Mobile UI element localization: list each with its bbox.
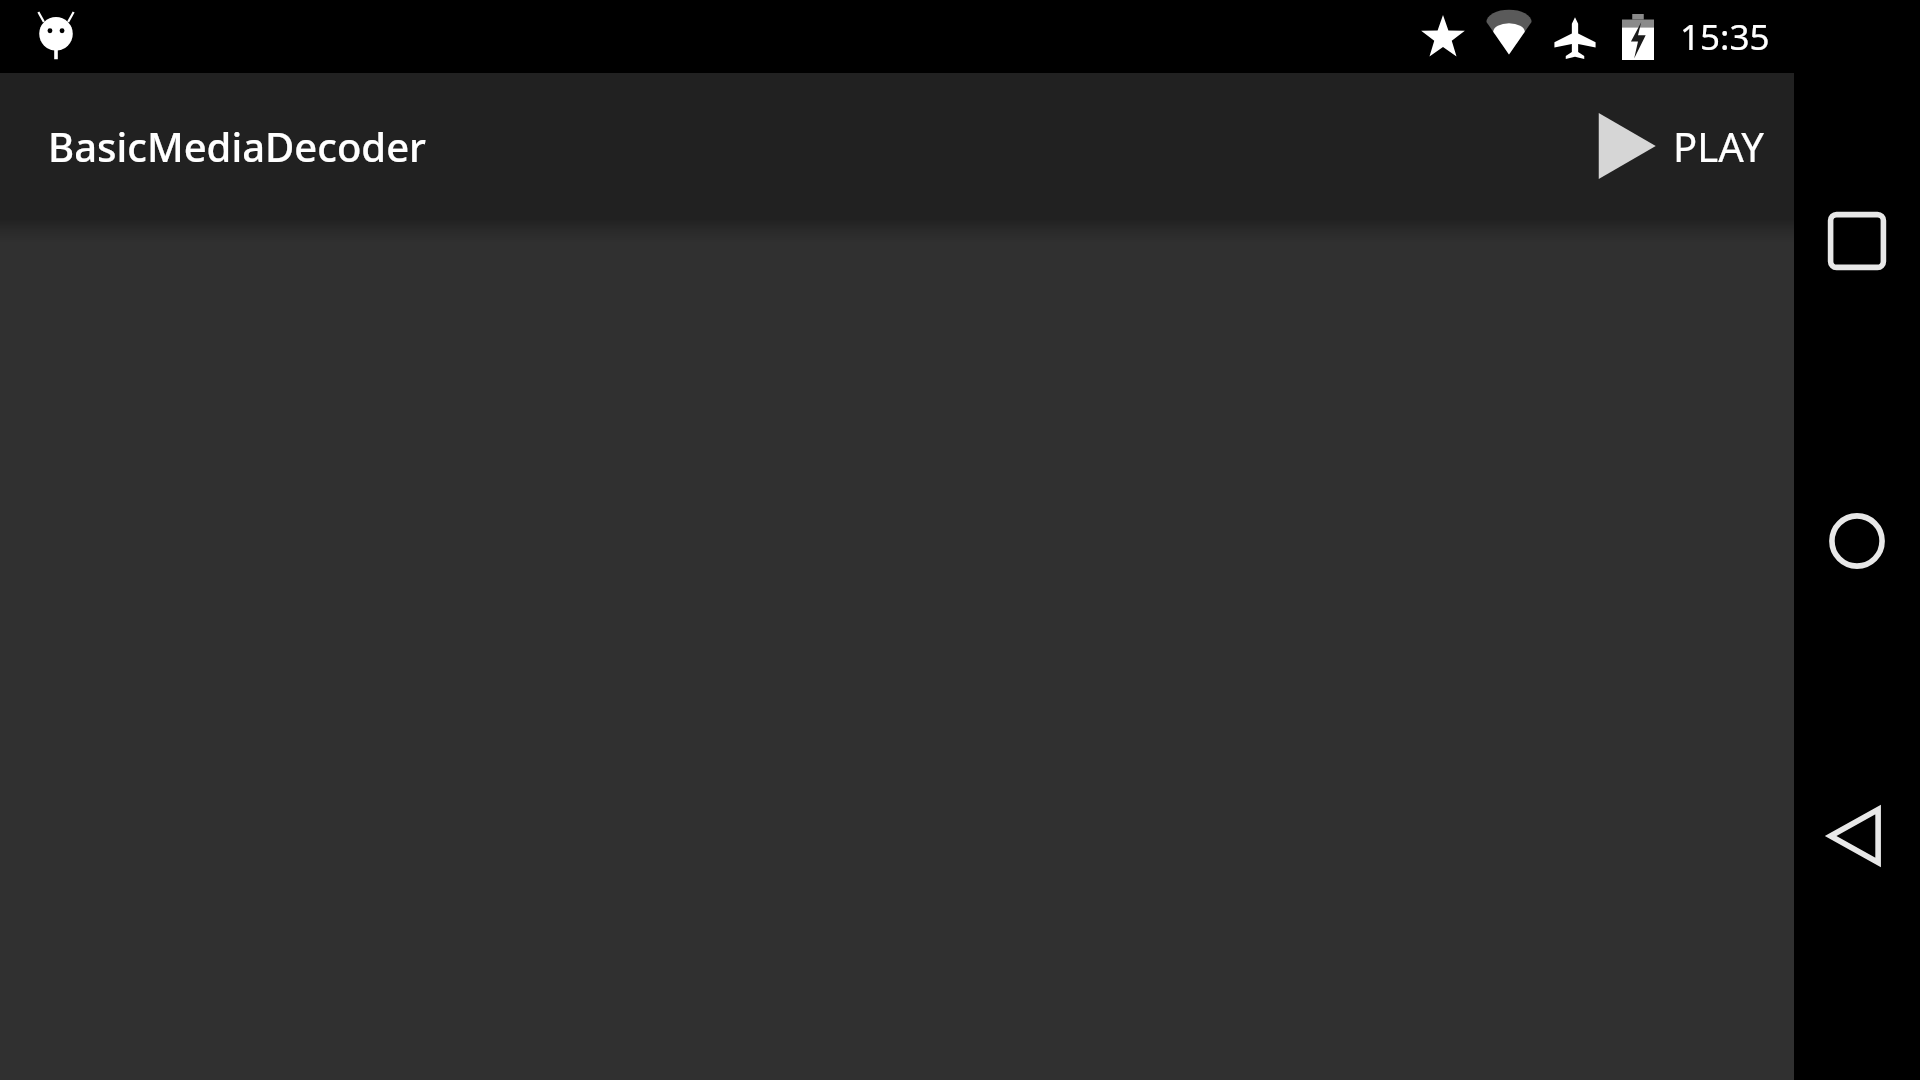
staticText: 15:35 [1680, 13, 1770, 61]
staticText: PLAY [1673, 119, 1764, 173]
button[interactable]: Play [1589, 103, 1770, 189]
button[interactable]: Back [1824, 803, 1890, 869]
staticText: BasicMediaDecoder [48, 119, 427, 173]
button[interactable]: Home [1824, 508, 1890, 574]
other: Play [1595, 113, 1657, 179]
button[interactable]: Recent apps [1824, 208, 1890, 274]
